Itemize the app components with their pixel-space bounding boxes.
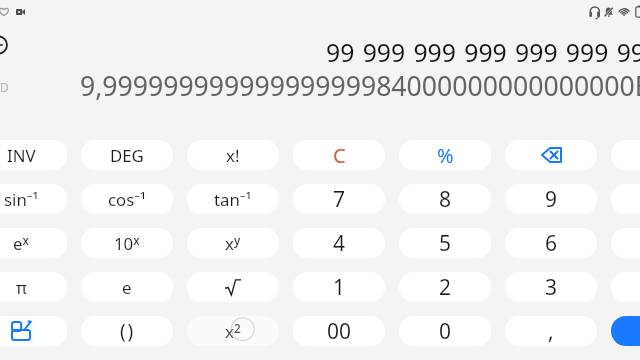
button[interactable]: 9 xyxy=(505,184,597,214)
button[interactable] xyxy=(611,140,640,170)
button[interactable]: 00 xyxy=(293,316,385,346)
button[interactable]: 2 xyxy=(399,272,491,302)
staticText: 9,99999999999999999984000000000000000E xyxy=(80,68,640,104)
button[interactable]: INV xyxy=(0,140,67,170)
staticText: 3 xyxy=(545,273,558,302)
button[interactable]: ( ) xyxy=(81,316,173,346)
button[interactable]: 0 xyxy=(399,316,491,346)
staticText: π xyxy=(16,276,27,299)
staticText: 7 xyxy=(333,185,346,214)
staticText: sin⁻¹ xyxy=(4,188,39,211)
staticText: RAD xyxy=(0,79,9,96)
button[interactable]: Square root xyxy=(187,272,279,302)
staticText: % xyxy=(437,142,454,169)
staticText: 99 999 999 999 999 999 999 xyxy=(326,35,640,69)
other: Square root xyxy=(225,279,241,295)
button[interactable]: C xyxy=(293,140,385,170)
staticText: x! xyxy=(226,144,240,167)
button[interactable]: sin⁻¹ xyxy=(0,184,67,214)
other: Backspace xyxy=(541,147,562,163)
button[interactable] xyxy=(611,272,640,302)
staticText: xy xyxy=(225,232,241,255)
button[interactable]: 6 xyxy=(505,228,597,258)
staticText: 9 xyxy=(545,185,558,214)
button[interactable]: xy xyxy=(187,228,279,258)
staticText: tan⁻¹ xyxy=(214,188,252,211)
button[interactable] xyxy=(611,228,640,258)
button[interactable]: tan⁻¹ xyxy=(187,184,279,214)
staticText: 6 xyxy=(545,229,558,258)
staticText: ( ) xyxy=(120,318,134,344)
button[interactable]: Unit converter xyxy=(0,316,67,346)
button[interactable]: % xyxy=(399,140,491,170)
button[interactable]: π xyxy=(0,272,67,302)
staticText: 5 xyxy=(439,229,452,258)
button[interactable]: ex xyxy=(0,228,67,258)
staticText: 1 xyxy=(333,273,346,302)
staticText: DEG xyxy=(110,144,144,167)
staticText: e xyxy=(122,276,132,299)
button[interactable]: x! xyxy=(187,140,279,170)
button[interactable]: 7 xyxy=(293,184,385,214)
button[interactable]: 4 xyxy=(293,228,385,258)
button[interactable]: 10x xyxy=(81,228,173,258)
button[interactable]: x2 xyxy=(187,316,279,346)
staticText: cos⁻¹ xyxy=(108,188,146,211)
button[interactable]: DEG xyxy=(81,140,173,170)
button[interactable]: cos⁻¹ xyxy=(81,184,173,214)
button[interactable]: e xyxy=(81,272,173,302)
staticText: 10x xyxy=(114,232,140,255)
button[interactable]: 8 xyxy=(399,184,491,214)
staticText: , xyxy=(548,317,554,346)
staticText: ex xyxy=(13,232,29,255)
staticText: x2 xyxy=(225,320,241,343)
staticText: C xyxy=(333,142,346,169)
button[interactable]: Backspace xyxy=(505,140,597,170)
button[interactable] xyxy=(611,316,640,346)
button[interactable]: 3 xyxy=(505,272,597,302)
button[interactable]: 1 xyxy=(293,272,385,302)
button[interactable]: , xyxy=(505,316,597,346)
staticText: 0 xyxy=(439,317,452,346)
button[interactable]: 5 xyxy=(399,228,491,258)
staticText: INV xyxy=(7,144,36,167)
button[interactable] xyxy=(611,184,640,214)
other: Unit converter xyxy=(11,321,31,341)
staticText: 00 xyxy=(327,317,352,346)
staticText: 2 xyxy=(439,273,452,302)
staticText: 8 xyxy=(439,185,452,214)
staticText: 4 xyxy=(333,229,346,258)
